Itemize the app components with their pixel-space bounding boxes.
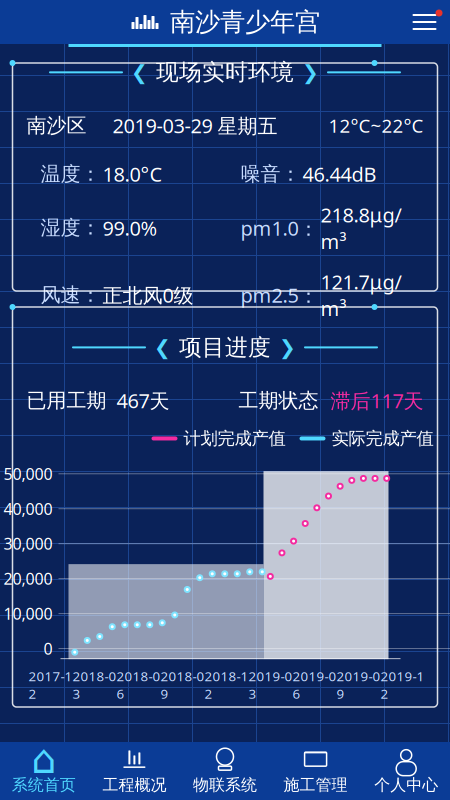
- staticText: 正北风0级: [102, 282, 193, 308]
- staticText: 湿度：: [40, 216, 100, 240]
- staticText: pm2.5：: [240, 282, 318, 308]
- staticText: 2018-12: [204, 667, 248, 702]
- staticText: pm1.0：: [240, 215, 318, 241]
- staticText: 风速：: [40, 283, 100, 307]
- staticText: 施工管理: [284, 775, 348, 795]
- staticText: ⌂: [31, 736, 56, 782]
- staticText: 50,000: [3, 463, 52, 484]
- staticText: 2018-03: [72, 667, 116, 702]
- staticText: 个人中心: [374, 775, 438, 795]
- staticText: 2019-12: [380, 667, 424, 702]
- staticText: 工期状态: [238, 388, 318, 413]
- button[interactable]: Menu: [397, 3, 450, 41]
- staticText: 实际完成产值: [331, 428, 433, 449]
- staticText: 18.0°C: [102, 161, 162, 187]
- staticText: ❯: [279, 336, 296, 359]
- staticText: 2018-06: [116, 667, 160, 702]
- staticText: 40,000: [3, 498, 52, 519]
- staticText: 46.44dB: [302, 161, 376, 187]
- button[interactable]: 工程概况: [89, 739, 180, 800]
- button[interactable]: 施工管理: [270, 739, 361, 800]
- staticText: ❮: [154, 336, 171, 359]
- staticText: 2018-09: [160, 667, 204, 702]
- staticText: 2019-09: [336, 667, 380, 702]
- staticText: 467天: [106, 387, 169, 414]
- staticText: 10,000: [3, 603, 52, 624]
- staticText: 2017-12: [28, 667, 72, 702]
- staticText: 2019-06: [292, 667, 336, 702]
- staticText: 现场实时环境: [156, 58, 294, 86]
- staticText: 218.8μg/m³: [320, 201, 401, 254]
- staticText: 工程概况: [102, 775, 166, 795]
- staticText: 项目进度: [179, 333, 271, 361]
- staticText: 30,000: [3, 533, 52, 554]
- staticText: 南沙区: [26, 113, 86, 138]
- staticText: ❯: [302, 61, 319, 84]
- staticText: 噪音：: [240, 162, 300, 186]
- staticText: 计划完成产值: [183, 428, 285, 449]
- staticText: 南沙青少年宫: [170, 6, 320, 37]
- staticText: 温度：: [40, 162, 100, 186]
- staticText: ❮: [131, 61, 148, 84]
- button[interactable]: 个人中心: [361, 739, 450, 800]
- staticText: 物联系统: [193, 775, 257, 795]
- staticText: 滞后117天: [318, 387, 423, 414]
- staticText: 已用工期: [26, 388, 106, 413]
- staticText: 0: [43, 638, 52, 659]
- button[interactable]: ⌂: [0, 739, 89, 800]
- staticText: 2019-03: [248, 667, 292, 702]
- staticText: 系统首页: [12, 775, 76, 795]
- staticText: 20,000: [3, 568, 52, 589]
- button[interactable]: 物联系统: [180, 739, 270, 800]
- staticText: 99.0%: [102, 215, 157, 241]
- staticText: 12°C~22°C: [328, 113, 423, 138]
- staticText: 121.7μg/m³: [320, 268, 401, 322]
- staticText: 2019-03-29 星期五: [112, 112, 277, 139]
